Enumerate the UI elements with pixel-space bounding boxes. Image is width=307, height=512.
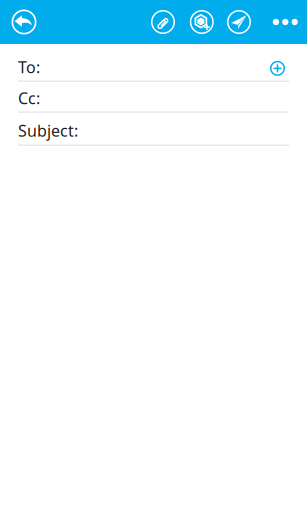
staticText: Cc: — [18, 87, 40, 109]
button[interactable]: To: — [0, 44, 307, 80]
staticText: To: — [18, 56, 40, 78]
button[interactable]: More options — [271, 9, 299, 35]
button[interactable]: Cc: — [0, 82, 307, 111]
button[interactable]: Send — [226, 9, 252, 35]
staticText: Subject: — [18, 120, 78, 141]
button[interactable]: Subject: — [0, 113, 307, 144]
button[interactable]: Back — [11, 9, 37, 35]
button[interactable]: Attach file — [150, 9, 176, 35]
button[interactable]: Insert object — [189, 9, 215, 35]
button[interactable]: Add recipient — [268, 57, 289, 77]
